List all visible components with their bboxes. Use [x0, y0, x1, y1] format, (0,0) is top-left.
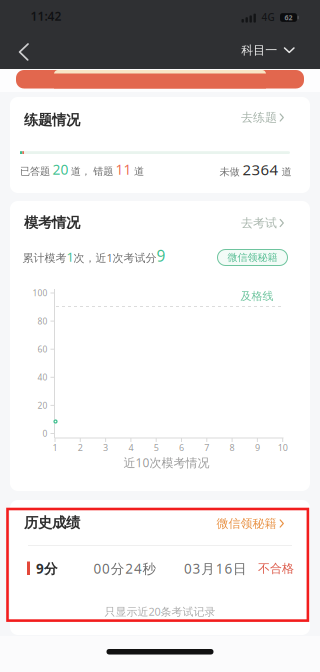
staticText: 11	[116, 160, 132, 179]
staticText: 微信领秘籍	[227, 251, 277, 264]
staticText: 4G	[261, 10, 274, 24]
staticText: 5	[154, 441, 159, 454]
button[interactable]: 选择科目	[241, 43, 295, 58]
button[interactable]: 返回	[11, 35, 37, 69]
staticText: 去练题	[241, 110, 277, 125]
staticText: 微信领秘籍	[216, 516, 276, 531]
staticText: 错题	[93, 165, 113, 178]
button[interactable]: 去练题	[241, 110, 284, 125]
staticText: 历史成绩	[24, 514, 80, 532]
staticText: 累计模考	[22, 251, 66, 265]
button[interactable]: 考试记录 9分 不合格	[19, 556, 309, 581]
staticText: 及格线	[240, 289, 273, 303]
staticText: 去考试	[241, 215, 277, 230]
staticText: 练题情况	[24, 111, 80, 129]
staticText: 20	[37, 400, 47, 411]
button[interactable]: 微信领秘籍	[217, 249, 288, 266]
staticText: 只显示近20条考试记录	[104, 604, 215, 619]
staticText: 科目一	[241, 43, 277, 58]
staticText: 近10次模考情况	[123, 454, 209, 471]
staticText: 1	[52, 441, 57, 454]
staticText: 9	[156, 245, 165, 266]
staticText: 2364	[242, 159, 278, 180]
staticText: 道	[281, 165, 291, 178]
staticText: 20	[52, 160, 68, 179]
staticText: 8	[230, 441, 235, 454]
staticText: 已答题	[20, 165, 50, 178]
staticText: 00分24秒	[93, 559, 156, 578]
staticText: 2	[78, 441, 83, 454]
staticText: 不合格	[258, 561, 294, 576]
staticText: 次，近1次考试分	[73, 250, 156, 265]
staticText: 9	[255, 441, 260, 454]
staticText: 03月16日	[184, 559, 247, 578]
staticText: 10	[278, 441, 288, 454]
staticText: 11:42	[30, 8, 61, 24]
button[interactable]: 去考试	[241, 215, 284, 230]
staticText: 未做	[219, 165, 239, 178]
staticText: 0	[42, 428, 47, 439]
staticText: 62	[284, 13, 292, 22]
staticText: 40	[37, 371, 47, 383]
staticText: 模考情况	[24, 214, 80, 232]
staticText: 道，	[71, 165, 91, 178]
staticText: 6	[179, 441, 184, 454]
staticText: 1	[66, 248, 73, 266]
staticText: 60	[37, 343, 47, 355]
staticText: 100	[32, 287, 47, 299]
staticText: 9分	[36, 559, 58, 578]
staticText: 4	[128, 441, 133, 454]
staticText: 7	[204, 441, 209, 454]
staticText: 道	[134, 165, 144, 178]
staticText: 3	[103, 441, 108, 454]
button[interactable]: 活动横幅	[16, 70, 304, 88]
staticText: 80	[37, 315, 47, 327]
button[interactable]: 微信领秘籍	[216, 516, 284, 531]
